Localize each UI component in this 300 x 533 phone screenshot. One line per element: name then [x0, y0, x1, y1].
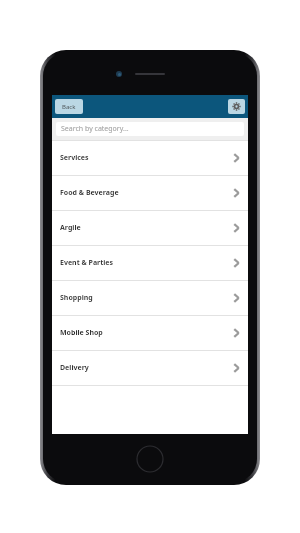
button[interactable]: Mobile Shop	[52, 316, 248, 350]
button[interactable]: Search by category...	[56, 122, 244, 136]
button[interactable]: Back	[55, 99, 83, 114]
staticText: Delivery	[60, 363, 89, 373]
button[interactable]: Services	[52, 141, 248, 175]
button[interactable]: Argile	[52, 211, 248, 245]
button[interactable]: Settings	[228, 99, 245, 114]
staticText: Food & Beverage	[60, 188, 119, 198]
staticText: Shopping	[60, 293, 93, 303]
staticText: Mobile Shop	[60, 328, 103, 338]
staticText: Services	[60, 153, 89, 163]
button[interactable]: Shopping	[52, 281, 248, 315]
staticText: Back	[62, 103, 76, 111]
staticText: Search by category...	[61, 124, 129, 134]
button[interactable]: Delivery	[52, 351, 248, 385]
staticText: Argile	[60, 223, 81, 233]
button[interactable]: Food & Beverage	[52, 176, 248, 210]
button[interactable]: Event & Parties	[52, 246, 248, 280]
staticText: Event & Parties	[60, 258, 114, 268]
